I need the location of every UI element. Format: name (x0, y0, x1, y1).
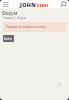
staticText: Войти (4, 37, 13, 41)
staticText: JOHN (20, 1, 36, 8)
button[interactable]: Scroll to top (56, 82, 63, 89)
staticText: | (14, 16, 17, 20)
staticText: Форум (17, 16, 26, 20)
button[interactable]: Search (60, 1, 67, 8)
button[interactable]: Menu (2, 1, 9, 7)
staticText: Форум (2, 10, 18, 16)
button[interactable]: Войти (3, 35, 14, 42)
button[interactable]: Главная (3, 16, 14, 20)
staticText: DEERE (37, 3, 49, 8)
staticText: Пожалуйста, войдите в систему (6, 25, 46, 29)
